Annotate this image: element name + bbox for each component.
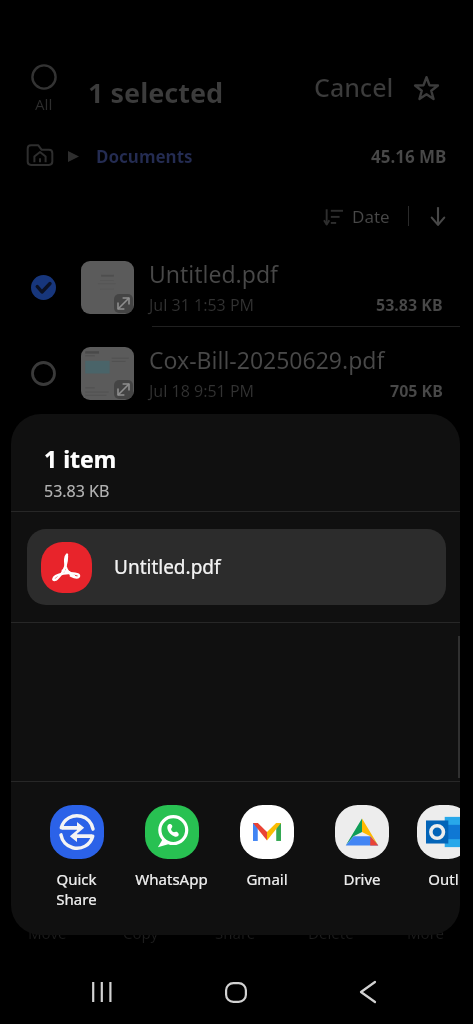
button[interactable]: Home — [206, 962, 266, 1022]
staticText: WhatsApp — [135, 869, 208, 889]
staticText: 705 KB — [390, 380, 443, 402]
button[interactable]: Copy — [94, 921, 188, 945]
staticText: 1 selected — [88, 74, 224, 111]
button[interactable]: Drive — [314, 802, 409, 889]
staticText: Share — [215, 923, 256, 943]
button[interactable]: Cox-Bill-20250629.pdf — [0, 334, 473, 412]
button[interactable]: WhatsApp — [124, 802, 219, 889]
staticText: 1 item — [44, 443, 117, 474]
staticText: Documents — [96, 145, 193, 168]
staticText: Cox-Bill-20250629.pdf — [149, 344, 385, 375]
staticText: Outl — [428, 869, 459, 889]
staticText: Date — [352, 205, 390, 228]
staticText: Drive — [343, 869, 381, 889]
button[interactable]: Untitled.pdf — [27, 529, 446, 605]
staticText: Quick Share — [56, 869, 97, 909]
button[interactable]: All — [20, 64, 68, 114]
button[interactable]: Quick Share — [29, 802, 124, 909]
button[interactable]: Delete — [283, 921, 378, 945]
button[interactable]: Sort descending — [425, 203, 451, 229]
staticText: All — [35, 94, 53, 114]
button[interactable]: Cancel — [310, 70, 398, 104]
staticText: Gmail — [246, 869, 288, 889]
staticText: Jul 31 1:53 PM — [149, 294, 255, 316]
staticText: Delete — [308, 923, 354, 943]
button[interactable]: Move — [0, 921, 94, 945]
staticText: 45.16 MB — [371, 145, 447, 168]
staticText: 53.83 KB — [376, 294, 443, 316]
staticText: Move — [28, 923, 67, 943]
button[interactable]: Favorite — [406, 68, 446, 108]
button[interactable]: Share — [188, 921, 283, 945]
staticText: More — [407, 923, 445, 943]
staticText: Jul 18 9:51 PM — [149, 380, 255, 402]
button[interactable]: Gmail — [219, 802, 314, 889]
button[interactable]: Home — [26, 142, 54, 170]
button[interactable]: More — [378, 921, 473, 945]
staticText: Copy — [123, 923, 159, 943]
staticText: Untitled.pdf — [149, 258, 278, 289]
button[interactable]: Date — [322, 205, 392, 228]
staticText: Untitled.pdf — [114, 554, 221, 580]
staticText: 53.83 KB — [44, 480, 110, 502]
button[interactable]: Untitled.pdf — [0, 248, 473, 326]
button[interactable]: Outl — [409, 802, 460, 889]
button[interactable]: Back — [338, 962, 398, 1022]
staticText: Cancel — [314, 70, 394, 104]
button[interactable]: Recents — [72, 962, 132, 1022]
